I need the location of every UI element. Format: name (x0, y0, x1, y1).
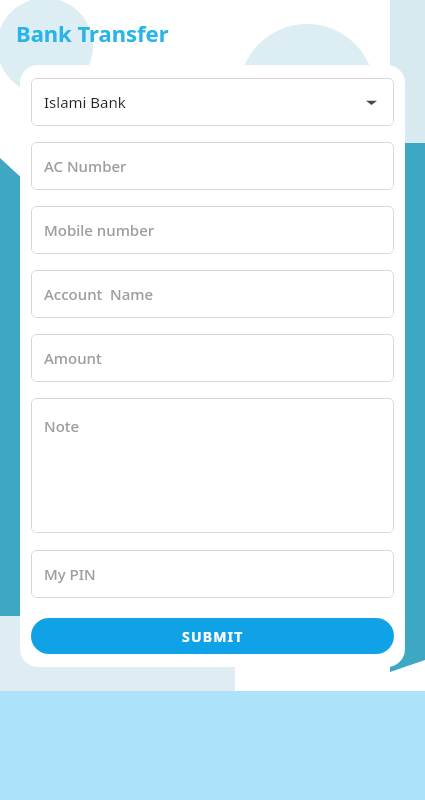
button[interactable]: Mobile number (31, 206, 394, 254)
staticText: Islami Bank (44, 92, 126, 112)
other: Select bank (366, 97, 377, 108)
staticText: Bank Transfer (16, 18, 169, 48)
staticText: SUBMIT (182, 627, 244, 646)
staticText: My PIN (44, 564, 96, 584)
button[interactable]: Amount (31, 334, 394, 382)
button[interactable]: AC Number (31, 142, 394, 190)
button[interactable]: Note (31, 398, 394, 533)
staticText: Mobile number (44, 220, 155, 240)
button[interactable]: Islami Bank (31, 78, 394, 126)
staticText: AC Number (44, 156, 127, 176)
staticText: Note (44, 416, 80, 436)
staticText: Account Name (44, 284, 154, 304)
button[interactable]: SUBMIT (31, 618, 394, 654)
button[interactable]: Account Name (31, 270, 394, 318)
staticText: Amount (44, 348, 102, 368)
button[interactable]: My PIN (31, 550, 394, 598)
